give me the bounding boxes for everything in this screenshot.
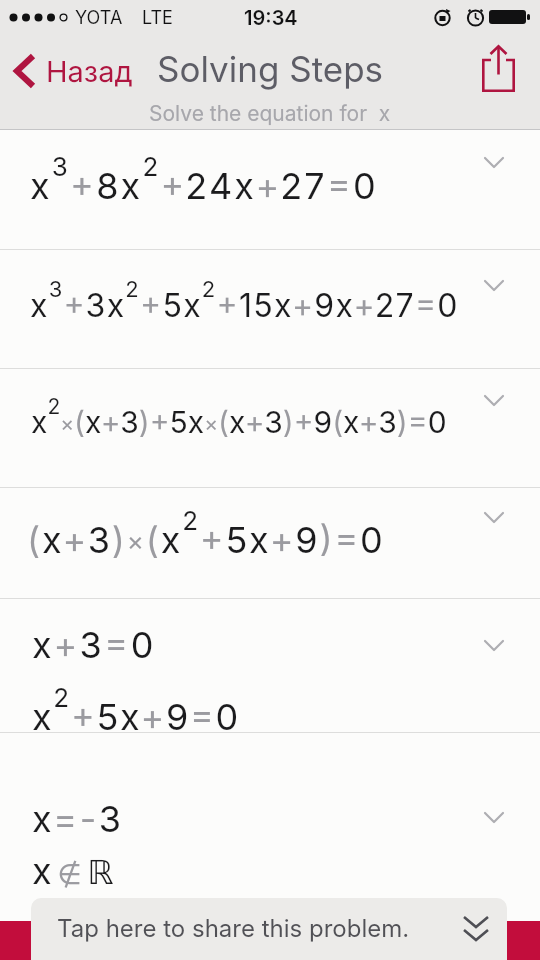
staticText: x ∉ ℝ <box>32 849 114 893</box>
staticText: Solving Steps <box>157 48 384 90</box>
staticText: x=-3 <box>32 797 124 841</box>
button[interactable] <box>474 38 524 98</box>
button[interactable] <box>0 369 540 487</box>
staticText: Назад <box>46 54 133 89</box>
staticText: x2×(x+3)+5x×(x+3)+9(x+3)=0 <box>31 394 447 440</box>
button[interactable] <box>0 488 540 598</box>
staticText: x3+8x2+24x+27=0 <box>30 151 378 208</box>
staticText: x+3=0 <box>32 623 157 667</box>
button[interactable]: Назад <box>8 46 138 94</box>
staticText: Tap here to share this problem. <box>57 914 410 943</box>
staticText: Solve the equation for x <box>149 101 391 126</box>
button[interactable]: Tap here to share this problem. <box>31 898 507 960</box>
staticText: x3+3x2+5x2+15x+9x+27=0 <box>30 276 459 325</box>
button[interactable] <box>0 599 540 732</box>
button[interactable] <box>0 250 540 368</box>
button[interactable] <box>0 130 540 249</box>
staticText: YOTA <box>75 7 123 29</box>
staticText: LTE <box>142 7 173 29</box>
button[interactable] <box>0 733 540 898</box>
staticText: x2+5x+9=0 <box>32 682 241 739</box>
staticText: (x+3)×(x2+5x+9)=0 <box>27 505 385 562</box>
staticText: 19:34 <box>244 6 298 30</box>
